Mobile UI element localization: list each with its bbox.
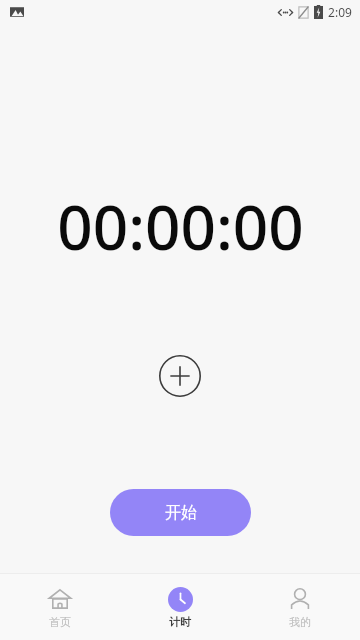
button[interactable]: Add lap <box>158 354 202 398</box>
staticText: 开始 <box>165 503 197 523</box>
staticText: 00:00:00 <box>57 184 304 268</box>
staticText: 首页 <box>49 615 71 629</box>
button[interactable]: 我的 <box>240 574 360 640</box>
staticText: 2:09 <box>328 4 352 20</box>
staticText: 我的 <box>289 615 311 629</box>
staticText: 计时 <box>169 615 191 629</box>
button[interactable]: 首页 <box>0 574 120 640</box>
button[interactable]: 计时 <box>120 574 240 640</box>
button[interactable]: 开始 <box>110 489 251 536</box>
